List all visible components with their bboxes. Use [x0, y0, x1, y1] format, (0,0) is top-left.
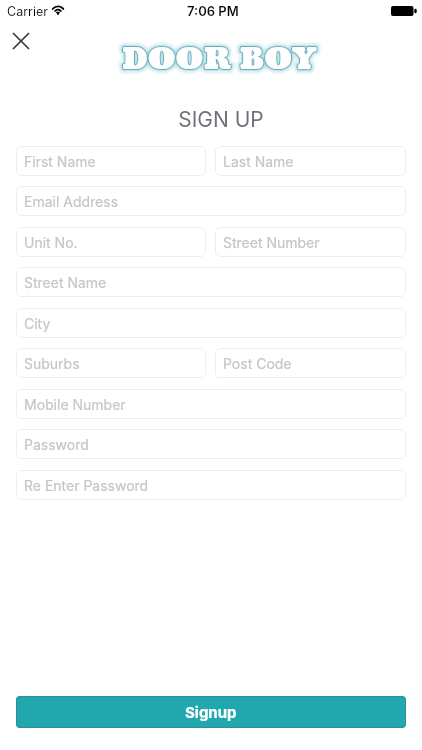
button[interactable]: Mobile Number — [16, 389, 406, 419]
button[interactable]: Street Name — [16, 267, 406, 297]
button[interactable]: Street Number — [215, 227, 406, 257]
button[interactable]: Last Name — [215, 146, 406, 176]
staticText: Mobile Number — [24, 396, 126, 413]
button[interactable]: Signup — [16, 696, 406, 728]
button[interactable]: Close — [3, 23, 39, 59]
staticText: Suburbs — [24, 355, 80, 372]
staticText: Re Enter Password — [24, 477, 149, 494]
button[interactable]: Re Enter Password — [16, 470, 406, 500]
staticText: Password — [24, 436, 89, 453]
staticText: Street Name — [24, 274, 107, 291]
button[interactable]: Password — [16, 429, 406, 459]
staticText: Signup — [185, 703, 237, 721]
staticText: Unit No. — [24, 234, 78, 251]
staticText: SIGN UP — [10, 107, 422, 132]
button[interactable]: Post Code — [215, 348, 406, 378]
button[interactable]: Email Address — [16, 186, 406, 216]
staticText: First Name — [24, 153, 96, 170]
staticText: Post Code — [223, 355, 292, 372]
staticText: Street Number — [223, 234, 320, 251]
button[interactable]: City — [16, 308, 406, 338]
staticText: Email Address — [24, 193, 119, 210]
staticText: City — [24, 315, 51, 332]
staticText: 7:06 PM — [187, 3, 239, 19]
button[interactable]: Unit No. — [16, 227, 206, 257]
button[interactable]: First Name — [16, 146, 206, 176]
staticText: Carrier — [7, 4, 48, 19]
staticText: Last Name — [223, 153, 294, 170]
button[interactable]: Suburbs — [16, 348, 206, 378]
